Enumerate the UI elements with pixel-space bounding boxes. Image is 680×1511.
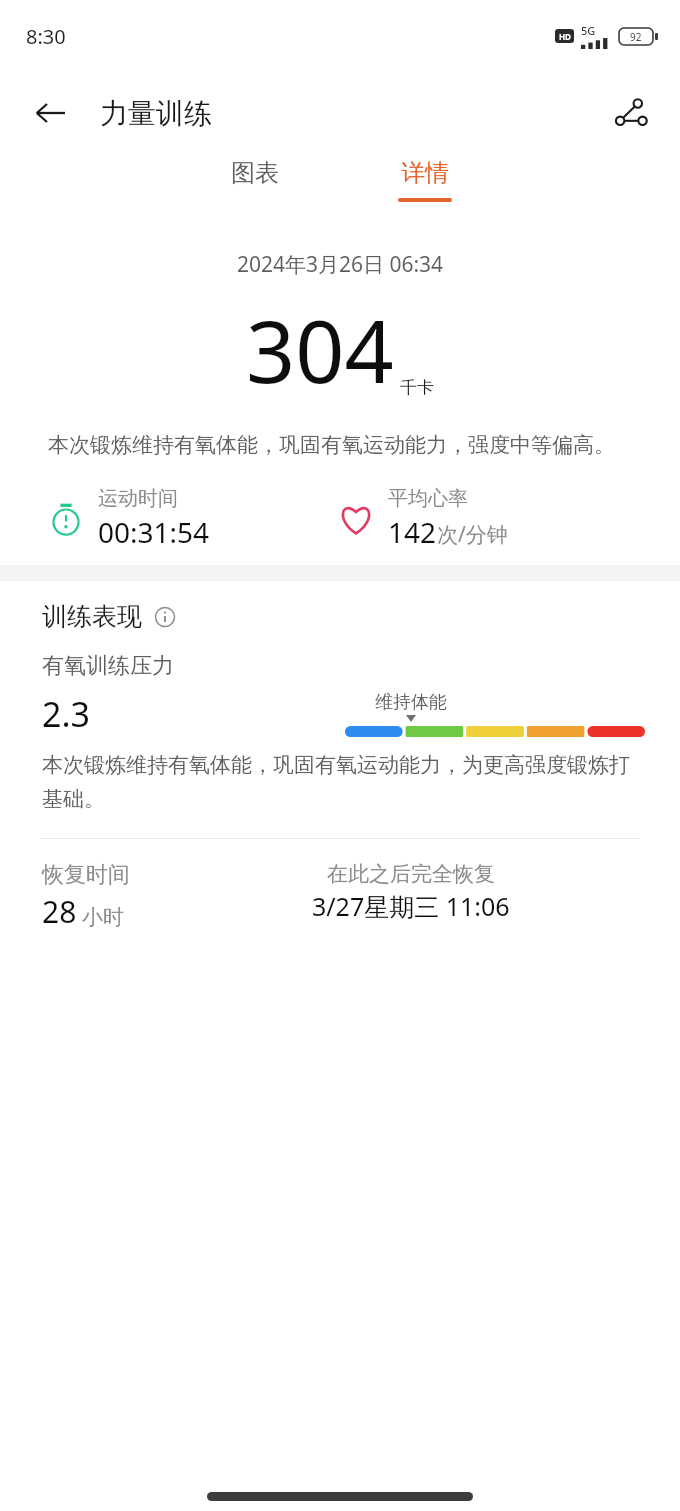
button[interactable]: 详情	[386, 154, 464, 202]
staticText: 5G	[581, 23, 596, 38]
staticText: 142	[388, 513, 437, 551]
staticText: 00:31:54	[98, 513, 210, 551]
staticText: 小时	[82, 904, 124, 930]
staticText: 8:30	[26, 23, 66, 50]
button[interactable]: Share	[604, 86, 658, 140]
staticText: 详情	[401, 158, 449, 188]
staticText: 维持体能	[375, 691, 447, 714]
staticText: 在此之后完全恢复	[327, 861, 495, 887]
staticText: 有氧训练压力	[42, 652, 174, 680]
button[interactable]: 图表	[216, 154, 294, 198]
staticText: 2024年3月26日 06:34	[0, 250, 680, 279]
staticText: 92	[630, 30, 642, 44]
button[interactable]: 平均心率	[334, 486, 680, 551]
staticText: 运动时间	[98, 486, 178, 511]
other: Info	[150, 602, 180, 632]
staticText: 图表	[231, 158, 279, 188]
staticText: 本次锻炼维持有氧体能，巩固有氧运动能力，为更高强度锻炼打基础。	[42, 752, 642, 812]
button[interactable]: Back	[24, 87, 76, 139]
button[interactable]: 训练表现	[42, 601, 180, 632]
staticText: 力量训练	[100, 96, 212, 131]
staticText: 平均心率	[388, 486, 468, 511]
staticText: 千卡	[400, 377, 434, 398]
button[interactable]: 运动时间	[44, 486, 334, 551]
staticText: HD	[559, 31, 571, 42]
staticText: 次/分钟	[437, 520, 508, 549]
staticText: 3/27星期三 11:06	[312, 889, 510, 923]
staticText: 2.3	[42, 691, 91, 737]
staticText: 恢复时间	[42, 861, 130, 889]
staticText: 训练表现	[42, 601, 142, 632]
staticText: 304	[246, 291, 394, 408]
staticText: 本次锻炼维持有氧体能，巩固有氧运动能力，强度中等偏高。	[48, 432, 632, 458]
staticText: 28	[42, 891, 77, 932]
